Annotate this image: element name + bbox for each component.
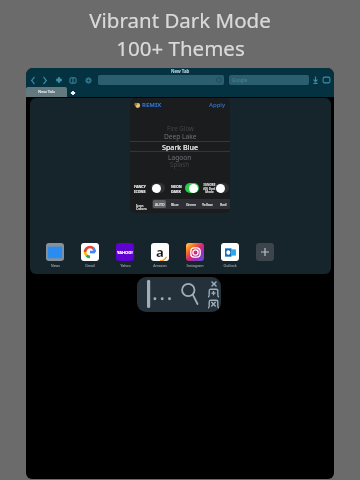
button[interactable]: Apply (209, 101, 226, 109)
staticText: Splash (170, 160, 190, 168)
button[interactable]: Back (27, 74, 39, 86)
button[interactable]: Tabs (320, 74, 332, 86)
staticText: Amazon (153, 263, 167, 268)
button[interactable]: Green (184, 200, 198, 208)
staticText: Vibrant Dark Mode (89, 6, 271, 34)
staticText: Blue (171, 202, 179, 207)
button[interactable]: REMIX (142, 101, 162, 109)
staticText: Outlook (223, 263, 237, 268)
button[interactable]: Bookmarks (67, 74, 79, 86)
button[interactable]: Add (53, 74, 65, 86)
button[interactable]: News (46, 243, 64, 268)
staticText: Yellow (202, 202, 213, 207)
button[interactable]: Lagoon (130, 152, 230, 162)
button[interactable]: YAHOO! (116, 243, 134, 268)
button[interactable]: Yellow (200, 200, 214, 208)
button[interactable]: Instagram (186, 243, 204, 268)
button[interactable]: Toggle off (151, 183, 165, 193)
button[interactable]: AUTO (153, 200, 166, 208)
staticText: 100+ Themes (116, 34, 245, 62)
button[interactable]: Fire Glow (130, 123, 230, 133)
button[interactable]: Search (179, 280, 199, 300)
button[interactable]: Splash (130, 159, 230, 169)
staticText: Fire Glow (167, 124, 194, 132)
button[interactable]: Add shortcut (256, 243, 274, 261)
staticText: Instagram (186, 263, 204, 268)
staticText: AUTO (155, 202, 165, 207)
button[interactable]: New tab (208, 289, 219, 297)
button[interactable]: Close (208, 279, 220, 288)
staticText: Deep Lake (164, 132, 197, 141)
button[interactable]: Gmail (81, 243, 99, 268)
button[interactable]: Downloads (309, 74, 321, 86)
staticText: Spark Blue (162, 142, 199, 152)
staticText: Mirage (173, 167, 187, 173)
staticText: a (156, 243, 164, 261)
button[interactable]: FANCY ICONS (134, 184, 146, 194)
button[interactable]: Spark Blue (130, 142, 230, 152)
button[interactable]: Red (216, 200, 230, 208)
staticText: News (51, 263, 60, 268)
button[interactable]: NEON DARK (171, 184, 182, 194)
button[interactable]: Blue (168, 200, 182, 208)
button[interactable]: IGNORE iOS Dark Mode (203, 183, 216, 194)
button[interactable]: Text cursor (147, 280, 173, 309)
staticText: YAHOO! (117, 250, 133, 255)
button[interactable]: a (151, 243, 169, 268)
button[interactable]: Close tab (208, 300, 219, 308)
staticText: Red (220, 202, 227, 207)
staticText: Green (186, 202, 197, 207)
button[interactable]: Toggle on (185, 183, 199, 193)
button[interactable]: Deep Lake (130, 131, 230, 141)
staticText: Google (232, 77, 248, 83)
button[interactable]: Toggle off (215, 183, 229, 193)
button[interactable]: Mirage (130, 165, 230, 175)
button[interactable]: New tab (67, 87, 78, 97)
staticText: New Tab (171, 68, 190, 74)
staticText: Yahoo (120, 263, 131, 268)
button[interactable]: Outlook (221, 243, 239, 268)
staticText: Lagoon (168, 153, 192, 162)
button[interactable]: New Tab (26, 87, 67, 97)
button[interactable]: Forward (39, 74, 51, 86)
button[interactable]: Profile (82, 74, 94, 86)
staticText: New Tab (38, 89, 55, 95)
button[interactable]: Icon Colors (136, 203, 147, 211)
staticText: Gmail (85, 263, 95, 268)
button[interactable]: Google (229, 75, 309, 85)
